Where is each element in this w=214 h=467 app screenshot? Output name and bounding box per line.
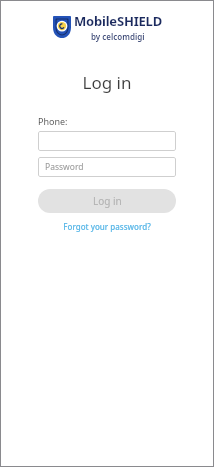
button[interactable]: Phone number input [38, 131, 176, 151]
button[interactable]: Log in [38, 189, 176, 213]
staticText: by celcomdigi [91, 31, 145, 42]
staticText: Password [45, 161, 84, 173]
staticText: Log in [93, 194, 122, 208]
staticText: Log in [0, 71, 214, 94]
button[interactable]: Password [38, 157, 176, 177]
staticText: MobileSHIELD [74, 12, 162, 30]
staticText: Phone: [38, 115, 68, 127]
button[interactable]: Forgot your password? [63, 221, 151, 232]
staticText: Forgot your password? [63, 221, 151, 232]
